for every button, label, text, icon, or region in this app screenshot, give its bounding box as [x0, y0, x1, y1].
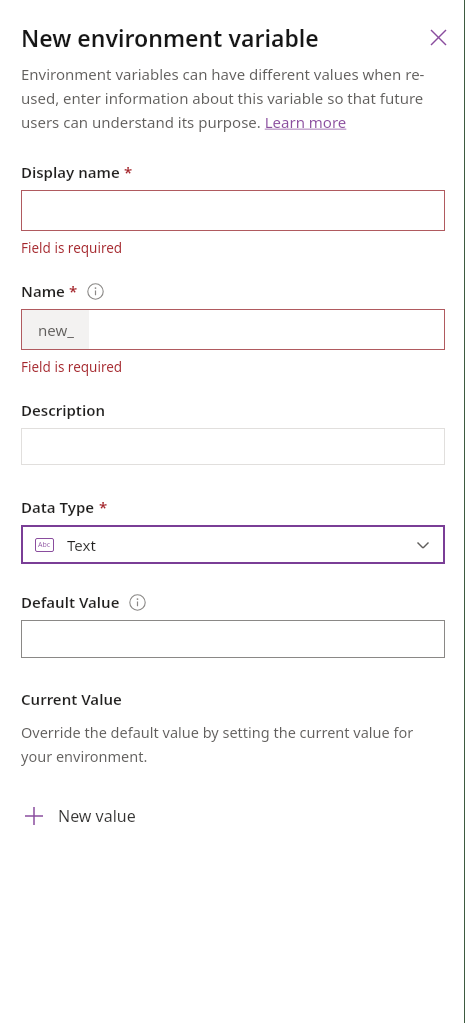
button[interactable]: [21, 620, 445, 658]
staticText: Data Type: [21, 497, 95, 517]
staticText: Abc: [38, 540, 51, 550]
staticText: Default Value: [21, 592, 120, 612]
staticText: Current Value: [21, 689, 122, 709]
button[interactable]: [21, 190, 445, 231]
staticText: Environment variables can have different…: [21, 64, 447, 132]
staticText: Text: [67, 535, 413, 555]
staticText: Override the default value by setting th…: [21, 722, 445, 766]
staticText: Field is required: [21, 358, 123, 376]
staticText: *: [95, 497, 108, 517]
staticText: *: [65, 281, 78, 301]
button[interactable]: More information: [129, 594, 146, 611]
staticText: New environment variable: [21, 22, 421, 53]
button[interactable]: new_: [21, 309, 445, 350]
staticText: Display name: [21, 162, 120, 182]
staticText: *: [120, 162, 133, 182]
staticText: Field is required: [21, 239, 123, 257]
button[interactable]: Abc: [21, 525, 445, 564]
staticText: Description: [21, 400, 105, 420]
button[interactable]: New value: [24, 798, 136, 834]
staticText: new_: [38, 320, 74, 340]
staticText: Name: [21, 281, 65, 301]
button[interactable]: More information: [87, 283, 104, 300]
staticText: New value: [58, 805, 136, 827]
button[interactable]: Close: [421, 20, 455, 54]
button[interactable]: [21, 428, 445, 465]
